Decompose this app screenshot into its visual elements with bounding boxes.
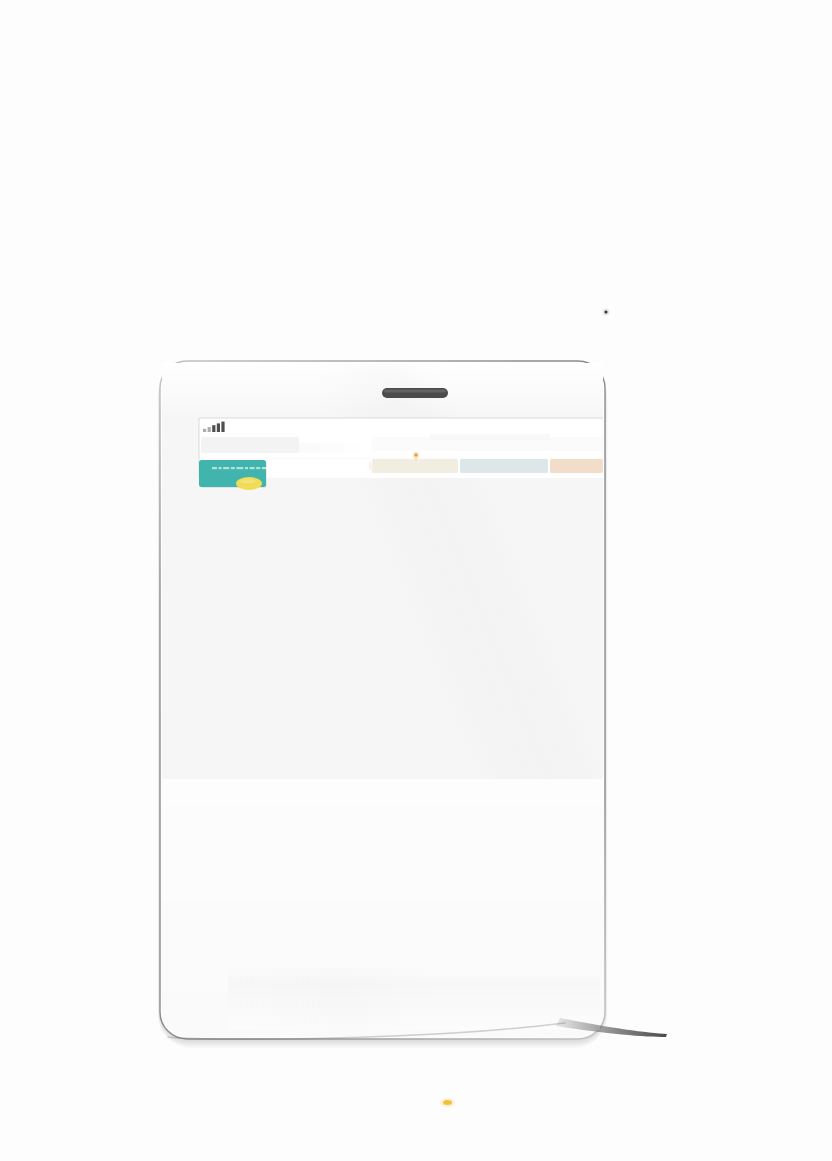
button[interactable]: Teal promotion card xyxy=(199,460,267,488)
button[interactable]: Peach list item xyxy=(550,459,604,474)
button[interactable]: Blue list item xyxy=(460,459,549,474)
button[interactable]: Signal strength xyxy=(201,420,231,435)
button[interactable]: Cream list item xyxy=(372,459,459,474)
